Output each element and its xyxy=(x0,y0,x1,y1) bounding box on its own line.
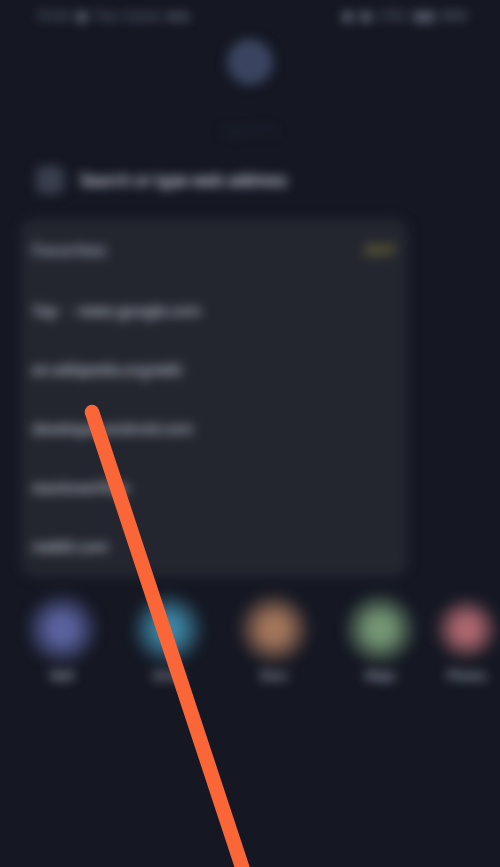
staticText: Mail xyxy=(50,667,74,683)
staticText: Search or type web address xyxy=(80,169,288,191)
button[interactable]: reddit.com xyxy=(20,516,408,575)
staticText: Favorites xyxy=(32,238,107,261)
staticText: Docs xyxy=(260,667,288,683)
button[interactable]: Maps xyxy=(327,591,433,683)
staticText: 10:24 ● Tue, 4 June ▪ ▪ xyxy=(36,6,189,24)
button[interactable]: developer.android.com xyxy=(20,398,408,457)
button[interactable]: Docs xyxy=(221,591,327,683)
button[interactable]: Mail xyxy=(9,591,115,683)
button[interactable]: Drive xyxy=(115,591,221,683)
staticText: EDIT xyxy=(365,240,396,259)
staticText: Maps xyxy=(365,667,396,683)
staticText: reddit.com xyxy=(32,536,109,556)
button[interactable]: Profile xyxy=(227,39,273,85)
staticText: developer.android.com xyxy=(32,418,194,438)
staticText: Photos xyxy=(447,667,487,683)
staticText: Drive xyxy=(153,667,183,683)
staticText: stackoverflow xyxy=(32,477,129,497)
button[interactable]: Search or type web address xyxy=(24,158,476,202)
button[interactable]: en.wikipedia.org/wiki xyxy=(20,339,408,398)
button[interactable]: Top · news.google.com xyxy=(20,280,408,339)
staticText: ● ● LTE2 ▮▮▮ 86% xyxy=(342,6,468,24)
button[interactable]: Favorites xyxy=(20,218,408,280)
button[interactable]: stackoverflow xyxy=(20,457,408,516)
staticText: en.wikipedia.org/wiki xyxy=(32,359,182,379)
button[interactable]: Photos xyxy=(433,591,500,683)
staticText: Top · news.google.com xyxy=(32,300,201,320)
